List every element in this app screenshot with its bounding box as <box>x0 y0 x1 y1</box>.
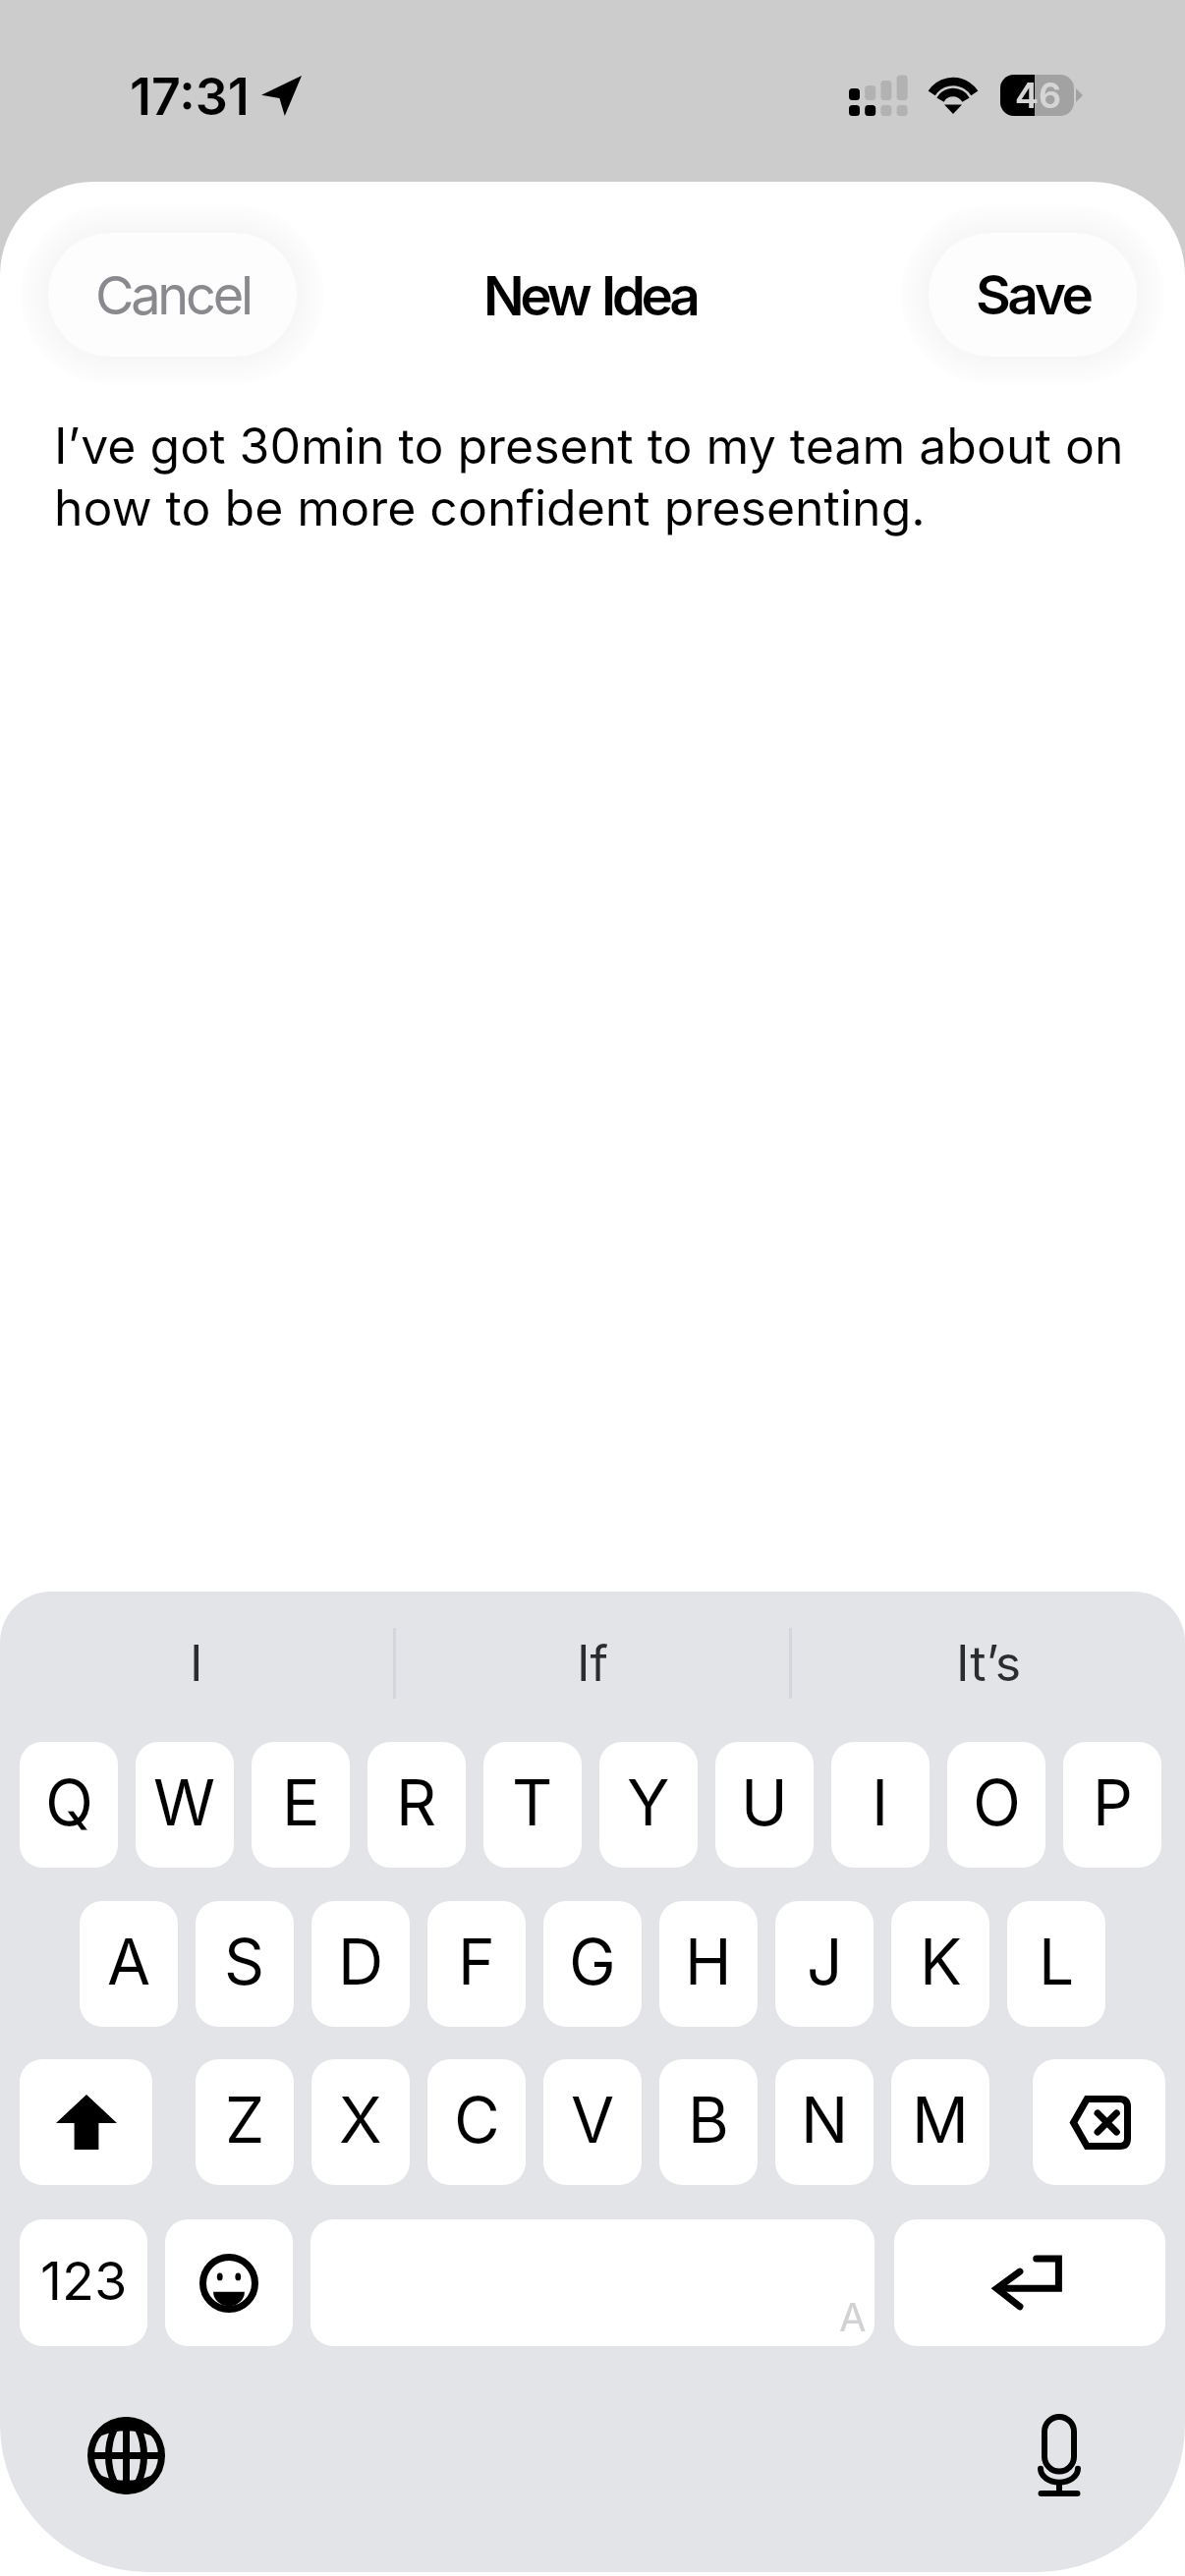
staticText: W <box>153 1764 216 1840</box>
button[interactable]: L <box>1007 1901 1105 2027</box>
staticText: Save <box>976 262 1091 328</box>
button[interactable]: P <box>1063 1742 1161 1868</box>
staticText: Q <box>45 1764 93 1840</box>
staticText: J <box>807 1924 843 1999</box>
staticText: V <box>571 2082 615 2157</box>
button[interactable]: T <box>483 1742 582 1868</box>
staticText: Y <box>627 1764 670 1840</box>
button[interactable]: G <box>543 1901 642 2027</box>
staticText: A <box>839 2293 867 2340</box>
staticText: N <box>801 2082 849 2157</box>
staticText: G <box>569 1924 616 1999</box>
button[interactable]: Switch keyboard <box>77 2406 175 2504</box>
button[interactable]: M <box>891 2059 989 2185</box>
button[interactable]: X <box>311 2059 410 2185</box>
button[interactable]: J <box>775 1901 874 2027</box>
button[interactable]: Save <box>929 233 1137 357</box>
staticText: I <box>190 1634 203 1693</box>
staticText: 123 <box>40 2249 128 2313</box>
button[interactable]: F <box>427 1901 526 2027</box>
staticText: H <box>685 1924 732 1999</box>
staticText: I <box>872 1764 889 1840</box>
staticText: O <box>973 1764 1021 1840</box>
staticText: 46 <box>1015 74 1062 117</box>
staticText: Cancel <box>95 263 251 327</box>
button[interactable]: Backspace <box>1033 2059 1165 2185</box>
staticText: If <box>577 1634 608 1693</box>
staticText: B <box>688 2082 729 2157</box>
button[interactable]: A <box>80 1901 178 2027</box>
button[interactable]: D <box>311 1901 410 2027</box>
staticText: P <box>1093 1764 1133 1840</box>
button[interactable]: N <box>775 2059 874 2185</box>
button[interactable]: B <box>659 2059 758 2185</box>
staticText: M <box>912 2082 969 2157</box>
button[interactable]: It’s <box>792 1592 1185 1734</box>
button[interactable]: Q <box>20 1742 118 1868</box>
staticText: A <box>107 1924 151 1999</box>
button[interactable]: V <box>543 2059 642 2185</box>
staticText: L <box>1039 1924 1075 1999</box>
button[interactable]: Space <box>310 2219 875 2346</box>
button[interactable]: If <box>396 1592 789 1734</box>
staticText: S <box>224 1924 265 1999</box>
staticText: 17:31 <box>130 66 250 128</box>
staticText: R <box>396 1764 437 1840</box>
staticText: X <box>339 2082 382 2157</box>
button[interactable]: Cancel <box>48 233 297 357</box>
button[interactable]: Dictate <box>1010 2406 1108 2504</box>
button[interactable]: U <box>715 1742 814 1868</box>
staticText: F <box>458 1924 495 1999</box>
button[interactable]: W <box>136 1742 234 1868</box>
button[interactable]: I <box>831 1742 930 1868</box>
button[interactable]: Z <box>196 2059 294 2185</box>
staticText: It’s <box>956 1634 1022 1693</box>
button[interactable]: Emoji <box>165 2219 293 2346</box>
button[interactable]: Y <box>599 1742 698 1868</box>
button[interactable]: Shift <box>20 2059 152 2185</box>
button[interactable]: I <box>0 1592 393 1734</box>
button[interactable]: Return <box>894 2219 1165 2346</box>
staticText: U <box>741 1764 788 1840</box>
button[interactable]: C <box>427 2059 526 2185</box>
staticText: K <box>920 1924 962 1999</box>
staticText: New Idea <box>483 263 697 329</box>
button[interactable]: K <box>891 1901 989 2027</box>
staticText: D <box>338 1924 384 1999</box>
button[interactable]: Numbers <box>20 2219 147 2346</box>
staticText: T <box>512 1764 553 1840</box>
button[interactable]: O <box>947 1742 1045 1868</box>
button[interactable]: S <box>196 1901 294 2027</box>
staticText: E <box>282 1764 320 1840</box>
staticText: Z <box>225 2082 265 2157</box>
button[interactable]: R <box>367 1742 466 1868</box>
staticText: C <box>454 2082 500 2157</box>
staticText: I’ve got 30min to present to my team abo… <box>54 417 1135 537</box>
button[interactable]: H <box>659 1901 758 2027</box>
button[interactable]: E <box>252 1742 350 1868</box>
